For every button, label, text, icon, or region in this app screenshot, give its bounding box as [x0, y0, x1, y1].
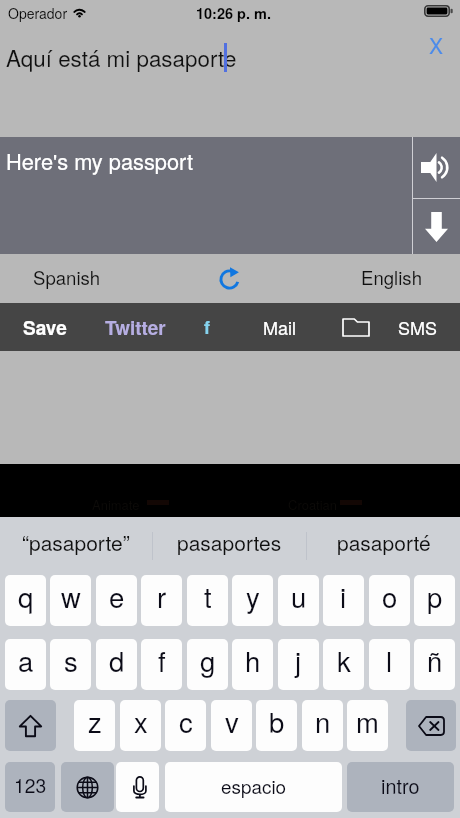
staticText: pasaporté	[337, 527, 431, 557]
staticText: ñ	[427, 640, 443, 679]
staticText: c	[179, 701, 193, 740]
staticText: 10:26 p. m.	[196, 3, 271, 24]
button[interactable]: f	[185, 303, 229, 351]
staticText: y	[246, 576, 260, 615]
staticText: Save	[23, 314, 67, 341]
button[interactable]: v	[211, 700, 252, 751]
button[interactable]: w	[50, 575, 91, 626]
button[interactable]: i	[323, 575, 364, 626]
button[interactable]: espacio	[165, 762, 342, 812]
button[interactable]: pasaportes	[153, 517, 306, 570]
button[interactable]: Speak translation	[413, 137, 460, 198]
staticText: Twitter	[105, 314, 166, 341]
staticText: Here's my passport	[6, 145, 194, 176]
staticText: espacio	[221, 772, 287, 799]
staticText: n	[315, 701, 331, 740]
staticText: Operador	[8, 3, 68, 23]
button[interactable]: b	[256, 700, 297, 751]
button[interactable]: pasaporté	[307, 517, 460, 570]
staticText: u	[291, 576, 307, 615]
staticText: t	[204, 576, 212, 615]
button[interactable]: m	[347, 700, 388, 751]
button[interactable]: Clear text	[421, 29, 452, 60]
button[interactable]: Save to Files	[325, 303, 387, 351]
staticText: g	[200, 640, 216, 679]
button[interactable]: Spanish	[9, 254, 124, 303]
staticText: x	[134, 701, 148, 740]
staticText: r	[157, 576, 167, 615]
button[interactable]: e	[96, 575, 137, 626]
button[interactable]: Switch keyboard	[61, 762, 114, 812]
staticText: SMS	[398, 314, 438, 340]
staticText: 123	[14, 771, 47, 799]
staticText: p	[427, 576, 443, 615]
staticText: d	[109, 640, 125, 679]
button[interactable]: Download translation	[413, 199, 460, 254]
staticText: “pasaporte”	[22, 527, 130, 557]
button[interactable]: Save	[10, 303, 80, 351]
staticText: f	[204, 314, 210, 340]
button[interactable]: d	[96, 639, 137, 690]
button[interactable]: Shift	[5, 700, 56, 751]
staticText: o	[382, 576, 398, 615]
button[interactable]: k	[323, 639, 364, 690]
staticText: Aquí está mi pasaporte	[6, 41, 237, 73]
button[interactable]: r	[141, 575, 182, 626]
button[interactable]: o	[369, 575, 410, 626]
staticText: a	[18, 640, 34, 679]
staticText: i	[340, 576, 347, 615]
button[interactable]: z	[74, 700, 115, 751]
button[interactable]: SMS	[392, 303, 444, 351]
button[interactable]: g	[187, 639, 228, 690]
staticText: X	[429, 30, 444, 60]
button[interactable]: f	[141, 639, 182, 690]
button[interactable]: Backspace	[406, 700, 456, 751]
staticText: intro	[381, 771, 420, 799]
staticText: s	[64, 640, 78, 679]
staticText: b	[269, 701, 285, 740]
button[interactable]: j	[278, 639, 319, 690]
button[interactable]: h	[232, 639, 273, 690]
staticText: English	[361, 264, 422, 291]
button[interactable]: English	[335, 254, 450, 303]
button[interactable]: Mail	[248, 303, 310, 351]
button[interactable]: p	[414, 575, 455, 626]
button[interactable]: s	[50, 639, 91, 690]
button[interactable]: c	[165, 700, 206, 751]
button[interactable]: a	[5, 639, 46, 690]
button[interactable]: intro	[347, 762, 454, 812]
staticText: k	[337, 640, 351, 679]
button[interactable]: n	[302, 700, 343, 751]
staticText: h	[245, 640, 261, 679]
button[interactable]: Swap languages	[210, 259, 250, 299]
staticText: z	[88, 701, 102, 740]
staticText: m	[356, 701, 379, 740]
staticText: Spanish	[33, 264, 101, 291]
staticText: v	[225, 701, 239, 740]
staticText: l	[386, 640, 393, 679]
staticText: Mail	[263, 314, 296, 340]
staticText: q	[18, 576, 34, 615]
button[interactable]: “pasaporte”	[0, 517, 152, 570]
button[interactable]: ñ	[414, 639, 455, 690]
staticText: f	[158, 640, 166, 679]
button[interactable]: x	[120, 700, 161, 751]
button[interactable]: l	[369, 639, 410, 690]
staticText: j	[295, 640, 302, 679]
staticText: pasaportes	[177, 527, 282, 557]
button[interactable]: Dictation	[116, 762, 159, 812]
staticText: w	[61, 576, 81, 615]
button[interactable]: u	[278, 575, 319, 626]
staticText: e	[109, 576, 125, 615]
button[interactable]: t	[187, 575, 228, 626]
button[interactable]: q	[5, 575, 46, 626]
staticText: Animate	[92, 495, 140, 514]
button[interactable]: y	[232, 575, 273, 626]
button[interactable]: 123	[5, 762, 55, 812]
button[interactable]: Twitter	[92, 303, 179, 351]
